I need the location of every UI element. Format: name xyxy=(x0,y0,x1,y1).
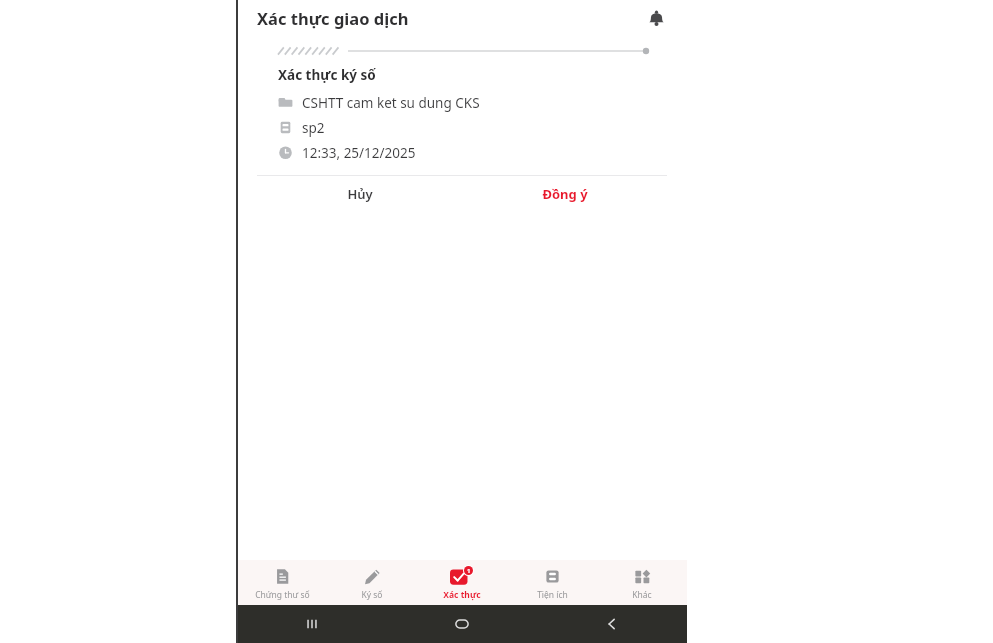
button[interactable]: Ký số xyxy=(327,560,417,605)
staticText: Xác thực xyxy=(443,589,481,601)
staticText: Xác thực giao dịch xyxy=(257,7,409,29)
button[interactable]: Đồng ý xyxy=(462,176,667,212)
staticText: Ký số xyxy=(361,589,383,601)
staticText: Khác xyxy=(632,589,652,601)
staticText: Chứng thư số xyxy=(255,589,310,601)
staticText: 12:33, 25/12/2025 xyxy=(302,144,416,162)
staticText: CSHTT cam ket su dung CKS xyxy=(302,94,480,112)
button[interactable]: Chứng thư số xyxy=(237,560,327,605)
button[interactable]: Tiện ích xyxy=(507,560,597,605)
staticText: Hủy xyxy=(347,185,373,203)
button[interactable]: 1 xyxy=(417,560,507,605)
staticText: 1 xyxy=(467,567,471,575)
button[interactable]: Home xyxy=(387,605,537,643)
button[interactable]: Recent apps xyxy=(237,605,387,643)
staticText: sp2 xyxy=(302,119,325,137)
staticText: Đồng ý xyxy=(542,185,588,203)
button[interactable]: Hủy xyxy=(257,176,462,212)
staticText: Tiện ích xyxy=(537,589,568,601)
button[interactable]: Khác xyxy=(597,560,687,605)
staticText: Xác thực ký số xyxy=(278,66,376,84)
button[interactable]: Notifications xyxy=(641,3,671,33)
button[interactable]: Back xyxy=(537,605,687,643)
